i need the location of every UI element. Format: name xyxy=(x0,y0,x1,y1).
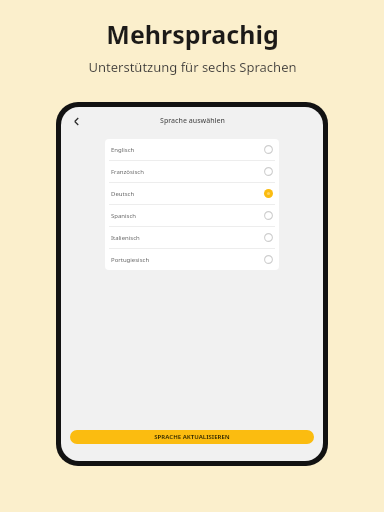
button[interactable]: Italienisch xyxy=(105,227,279,248)
button[interactable]: Deutsch xyxy=(105,183,279,204)
staticText: Englisch xyxy=(111,146,264,154)
staticText: Italienisch xyxy=(111,234,264,242)
staticText: Portugiesisch xyxy=(111,256,264,264)
staticText: Mehrsprachig xyxy=(106,17,279,51)
button[interactable]: Spanisch xyxy=(105,205,279,226)
staticText: Sprache auswählen xyxy=(160,116,225,126)
staticText: Spanisch xyxy=(111,212,264,220)
button[interactable]: Portugiesisch xyxy=(105,249,279,270)
staticText: Unterstützung für sechs Sprachen xyxy=(88,58,297,76)
button[interactable]: SPRACHE AKTUALISIEREN xyxy=(70,430,314,444)
button[interactable]: Englisch xyxy=(105,139,279,160)
staticText: Französisch xyxy=(111,168,264,176)
staticText: SPRACHE AKTUALISIEREN xyxy=(154,433,230,441)
staticText: Deutsch xyxy=(111,190,264,198)
button[interactable]: Zurück xyxy=(66,111,86,131)
button[interactable]: Französisch xyxy=(105,161,279,182)
